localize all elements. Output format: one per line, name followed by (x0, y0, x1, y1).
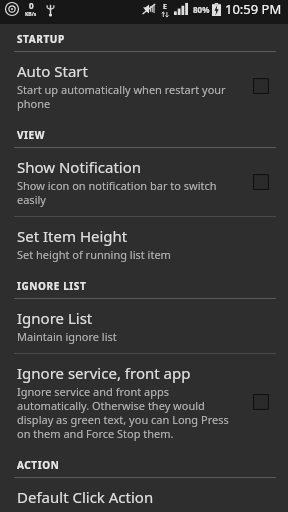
button[interactable]: Show Notification (0, 148, 288, 216)
staticText: IGNORE LIST (17, 279, 87, 293)
button[interactable]: Toggle Auto Start (244, 69, 278, 103)
staticText: Ignore service and front apps automatica… (17, 384, 236, 441)
staticText: Set Item Height (17, 226, 128, 246)
button[interactable]: Auto Start (0, 52, 288, 120)
staticText: 80% (193, 4, 210, 15)
staticText: Auto Start (17, 61, 88, 81)
staticText: Ignore service, front app (17, 363, 191, 383)
staticText: Ignore List (17, 308, 93, 328)
staticText: 0 (29, 0, 34, 11)
staticText: Start up automatically when restart your… (17, 82, 236, 111)
staticText: STARTUP (17, 32, 65, 46)
staticText: Maintain ignore list (17, 329, 117, 344)
button[interactable]: Toggle Ignore service, front app (244, 385, 278, 419)
staticText: ACTION (17, 458, 60, 472)
staticText: Default Click Action (17, 487, 154, 503)
staticText: 10:59 PM (225, 0, 282, 18)
button[interactable]: Ignore List (0, 299, 288, 353)
button[interactable]: Ignore service, front app (0, 354, 288, 450)
staticText: E (163, 2, 167, 12)
staticText: Show icon on notification bar to switch … (17, 178, 236, 207)
button[interactable]: Set Item Height (0, 217, 288, 271)
staticText: Set height of running list item (17, 247, 171, 262)
staticText: VIEW (17, 128, 46, 142)
button[interactable]: Toggle Show Notification (244, 165, 278, 199)
button[interactable]: Default Click Action (0, 478, 288, 512)
staticText: Show Notification (17, 157, 142, 177)
staticText: KB/s (25, 11, 37, 18)
